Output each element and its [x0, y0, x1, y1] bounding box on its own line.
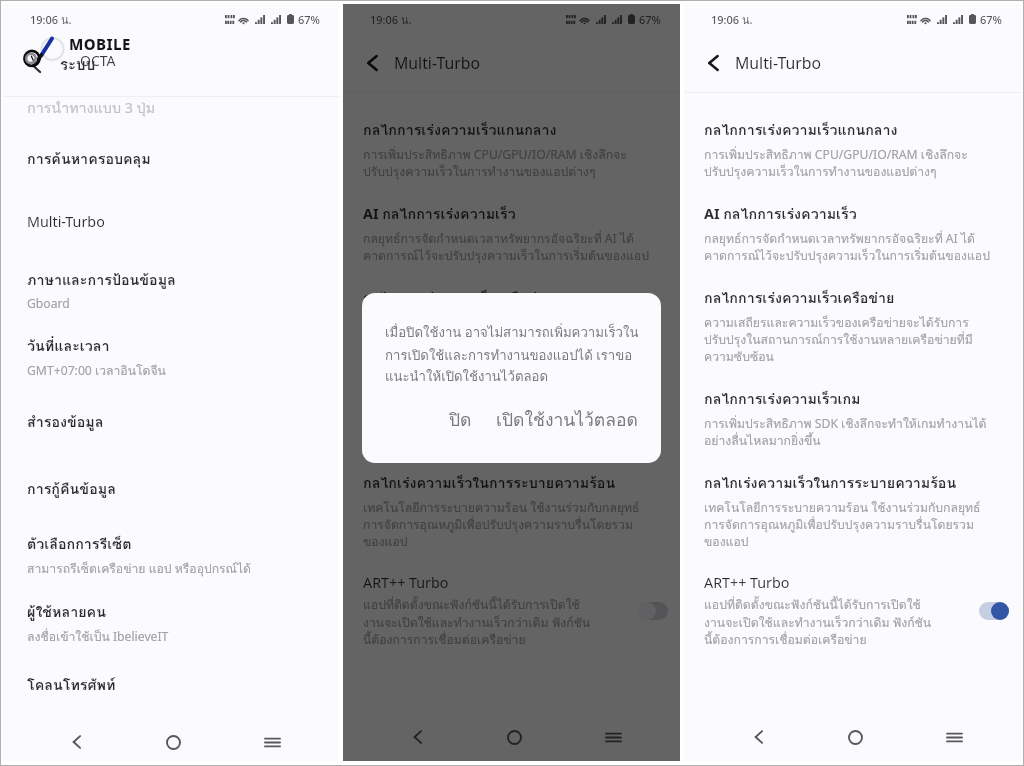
staticText: กลไกเร่งความเร็วในการระบายความร้อน: [704, 472, 957, 495]
button[interactable]: เปิดใช้งานไว้ตลอด: [494, 399, 640, 441]
button[interactable]: Recent apps: [596, 720, 630, 754]
button[interactable]: Back: [698, 48, 728, 78]
staticText: แอปที่ติดตั้งขณะฟังก์ชันนี้ได้รับการเปิด…: [363, 595, 594, 649]
button[interactable]: ART++ Turbo toggle: [638, 602, 668, 620]
button[interactable]: ตัวเลือกการรีเซ็ต: [3, 522, 339, 590]
staticText: เทคโนโลยีการระบายความร้อน ใช้งานร่วมกับก…: [704, 498, 993, 551]
staticText: ปิด: [449, 406, 472, 434]
staticText: Gboard: [27, 295, 70, 312]
button[interactable]: สำรองข้อมูล: [3, 400, 339, 467]
staticText: กลยุทธ์การจัดกำหนดเวลาทรัพยากรอัจฉริยะที…: [363, 229, 652, 265]
staticText: เมื่อปิดใช้งาน อาจไม่สามารถเพิ่มความเร็ว…: [385, 322, 640, 387]
button[interactable]: กลไกการเร่งความเร็วเครือข่าย: [343, 276, 680, 377]
staticText: การเพิ่มประสิทธิภาพ CPU/GPU/IO/RAM เชิงล…: [704, 145, 993, 181]
button[interactable]: กลไกการเร่งความเร็วแกนกลาง: [343, 108, 680, 192]
staticText: ระบบ: [60, 53, 96, 77]
button[interactable]: การค้นหาครอบคลุม: [3, 137, 339, 201]
button[interactable]: กลไกเร่งความเร็วในการระบายความร้อน: [684, 461, 1021, 562]
button[interactable]: Back: [357, 48, 387, 78]
staticText: ตัวเลือกการรีเซ็ต: [27, 533, 132, 556]
staticText: Multi-Turbo: [394, 52, 480, 74]
button[interactable]: โคลนโทรศัพท์: [3, 663, 339, 723]
staticText: กลไกการเร่งความเร็วแกนกลาง: [704, 119, 898, 142]
staticText: Multi-Turbo: [735, 52, 821, 74]
staticText: 67%: [639, 12, 661, 27]
button[interactable]: Back: [401, 720, 435, 754]
staticText: สามารถรีเซ็ตเครือข่าย แอป หรืออุปกรณ์ได้: [27, 559, 251, 578]
button[interactable]: Recent apps: [255, 725, 289, 759]
button[interactable]: ART++ Turbo toggle: [979, 602, 1009, 620]
staticText: 19:06 น.: [370, 11, 412, 28]
button[interactable]: ART++ Turbo: [684, 562, 1021, 660]
staticText: เปิดใช้งานไว้ตลอด: [496, 406, 638, 434]
staticText: ความเสถียรและความเร็วของเครือข่ายจะได้รั…: [363, 313, 652, 366]
button[interactable]: Back: [21, 50, 51, 80]
button[interactable]: Recent apps: [937, 720, 971, 754]
button[interactable]: Home: [156, 725, 190, 759]
staticText: กลไกการเร่งความเร็วเครือข่าย: [363, 287, 554, 310]
button[interactable]: ปิด: [440, 399, 481, 441]
button[interactable]: การกู้คืนข้อมูล: [3, 467, 339, 522]
staticText: 19:06 น.: [711, 11, 753, 28]
button[interactable]: กลไกการเร่งความเร็วเกม: [343, 377, 680, 461]
staticText: กลไกเร่งความเร็วในการระบายความร้อน: [363, 472, 616, 495]
staticText: การนำทางแบบ 3 ปุ่ม: [27, 97, 156, 120]
button[interactable]: กลไกการเร่งความเร็วเครือข่าย: [684, 276, 1021, 377]
staticText: กลไกการเร่งความเร็วเกม: [704, 388, 861, 411]
staticText: แอปที่ติดตั้งขณะฟังก์ชันนี้ได้รับการเปิด…: [704, 595, 935, 649]
button[interactable]: ART++ Turbo: [343, 562, 680, 660]
staticText: OCTA: [80, 51, 116, 70]
button[interactable]: ผู้ใช้หลายคน: [3, 590, 339, 663]
staticText: 67%: [980, 12, 1002, 27]
staticText: กลยุทธ์การจัดกำหนดเวลาทรัพยากรอัจฉริยะที…: [704, 229, 993, 265]
staticText: โคลนโทรศัพท์: [27, 674, 116, 697]
staticText: MOBILE: [69, 34, 131, 54]
staticText: กลไกการเร่งความเร็วเครือข่าย: [704, 287, 895, 310]
staticText: ความเสถียรและความเร็วของเครือข่ายจะได้รั…: [704, 313, 993, 366]
button[interactable]: Multi-Turbo: [3, 201, 339, 258]
staticText: วันที่และเวลา: [27, 335, 110, 358]
staticText: AI กลไกการเร่งความเร็ว: [704, 203, 857, 226]
staticText: 19:06 น.: [30, 11, 72, 28]
button[interactable]: Home: [838, 720, 872, 754]
staticText: การเพิ่มประสิทธิภาพ SDK เชิงลึกจะทำให้เก…: [704, 414, 993, 450]
staticText: 67%: [298, 12, 320, 27]
staticText: การกู้คืนข้อมูล: [27, 478, 116, 501]
button[interactable]: กลไกการเร่งความเร็วแกนกลาง: [684, 108, 1021, 192]
staticText: ART++ Turbo: [363, 573, 449, 592]
button[interactable]: กลไกการเร่งความเร็วเกม: [684, 377, 1021, 461]
staticText: สำรองข้อมูล: [27, 411, 104, 434]
button[interactable]: ภาษาและการป้อนข้อมูล: [3, 258, 339, 324]
staticText: ภาษาและการป้อนข้อมูล: [27, 269, 176, 292]
staticText: การเพิ่มประสิทธิภาพ CPU/GPU/IO/RAM เชิงล…: [363, 145, 652, 181]
button[interactable]: Back: [742, 720, 776, 754]
button[interactable]: การนำทางแบบ 3 ปุ่ม: [3, 97, 339, 137]
staticText: AI กลไกการเร่งความเร็ว: [363, 203, 516, 226]
staticText: ผู้ใช้หลายคน: [27, 601, 106, 624]
staticText: ART++ Turbo: [704, 573, 790, 592]
button[interactable]: Back: [60, 725, 94, 759]
staticText: การค้นหาครอบคลุม: [27, 148, 151, 171]
button[interactable]: AI กลไกการเร่งความเร็ว: [343, 192, 680, 276]
staticText: กลไกการเร่งความเร็วแกนกลาง: [363, 119, 557, 142]
button[interactable]: Home: [497, 720, 531, 754]
staticText: การเพิ่มประสิทธิภาพ SDK เชิงลึกจะทำให้เก…: [363, 414, 652, 450]
staticText: GMT+07:00 เวลาอินโดจีน: [27, 361, 166, 380]
button[interactable]: AI กลไกการเร่งความเร็ว: [684, 192, 1021, 276]
staticText: ลงชื่อเข้าใช้เป็น IbelieveIT: [27, 627, 169, 646]
staticText: เทคโนโลยีการระบายความร้อน ใช้งานร่วมกับก…: [363, 498, 652, 551]
staticText: Multi-Turbo: [27, 212, 105, 231]
button[interactable]: กลไกเร่งความเร็วในการระบายความร้อน: [343, 461, 680, 562]
button[interactable]: วันที่และเวลา: [3, 324, 339, 400]
